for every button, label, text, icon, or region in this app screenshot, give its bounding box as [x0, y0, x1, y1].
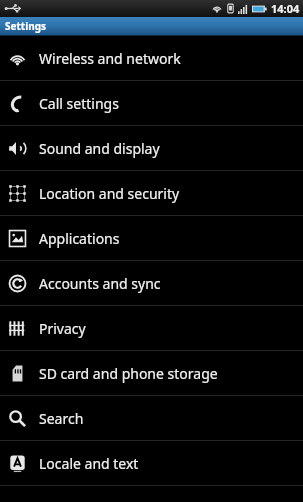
button[interactable]: Locale and text: [0, 441, 303, 485]
button[interactable]: SD card and phone storage: [0, 351, 303, 395]
button[interactable]: Wireless and network: [0, 36, 303, 80]
button[interactable]: Call settings: [0, 81, 303, 125]
staticText: Call settings: [39, 94, 119, 113]
button[interactable]: Sound and display: [0, 126, 303, 170]
staticText: Search: [39, 409, 84, 428]
staticText: Locale and text: [39, 454, 139, 473]
staticText: Settings: [5, 19, 46, 33]
staticText: Sound and display: [39, 139, 160, 158]
button[interactable]: Location and security: [0, 171, 303, 215]
staticText: SD card and phone storage: [39, 364, 218, 383]
staticText: 14:04: [271, 1, 300, 16]
button[interactable]: Accounts and sync: [0, 261, 303, 305]
staticText: Applications: [39, 229, 120, 248]
button[interactable]: Privacy: [0, 306, 303, 350]
button[interactable]: Applications: [0, 216, 303, 260]
button[interactable]: Search: [0, 396, 303, 440]
staticText: Wireless and network: [39, 49, 181, 68]
staticText: Privacy: [39, 319, 86, 338]
staticText: Location and security: [39, 184, 180, 203]
staticText: Accounts and sync: [39, 274, 161, 293]
